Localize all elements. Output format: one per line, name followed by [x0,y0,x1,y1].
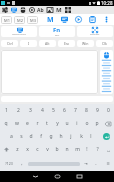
button[interactable]: Mouse [18,6,27,14]
button[interactable]: Macro M [43,14,57,25]
button[interactable]: I [20,40,37,47]
button[interactable]: q [0,117,11,130]
button[interactable]: y [52,117,62,130]
staticText: y [56,120,59,127]
button[interactable]: 0 [103,104,114,117]
button[interactable]: Image [45,6,54,14]
button[interactable]: l [86,130,96,143]
button[interactable]: Clipboard [85,14,99,25]
button[interactable]: Fn keys [39,26,75,37]
button[interactable]: Ctrl [1,40,18,47]
staticText: M [56,6,62,14]
button[interactable]: h [56,130,66,143]
button[interactable]: Touchpad [1,50,98,94]
button[interactable]: Play [27,6,36,14]
button[interactable]: Esc [58,40,75,47]
button[interactable]: r [32,117,42,130]
staticText: fullscreen [90,33,100,36]
button[interactable]: g [46,130,56,143]
button[interactable]: 9 [92,104,103,117]
button[interactable]: k [76,130,86,143]
button[interactable]: ? [92,143,102,156]
button[interactable]: 3 [24,104,36,117]
staticText: 1 [5,107,8,114]
staticText: n [65,146,69,153]
staticText: remote control [12,33,27,36]
button[interactable]: Enter [98,130,114,143]
button[interactable]: M3 [27,16,38,24]
button[interactable]: o [82,117,92,130]
button[interactable]: Text [36,6,45,14]
button[interactable]: Scroll wheel [100,50,113,94]
button[interactable]: Settings [0,6,9,14]
staticText: ␣ [107,147,110,152]
button[interactable]: 7 [70,104,81,117]
staticText: t [46,120,48,127]
staticText: 4 [41,107,44,114]
button[interactable]: 4 [36,104,48,117]
staticText: 0 [107,107,110,114]
button[interactable]: Remote display [1,26,37,37]
button[interactable]: Shift [0,143,12,156]
button[interactable]: Fullscreen [77,26,113,37]
button[interactable]: Display [57,14,71,25]
button[interactable]: Home [46,171,68,182]
button[interactable]: 5 [48,104,59,117]
button[interactable]: d [26,130,36,143]
button[interactable]: p [92,117,102,130]
button[interactable]: Back [24,171,46,182]
staticText: x [26,146,29,153]
button[interactable]: 8 [81,104,92,117]
staticText: l [90,133,92,140]
button[interactable]: c [32,143,42,156]
button[interactable]: Recent apps [68,171,90,182]
button[interactable]: z [12,143,22,156]
button[interactable]: m [72,143,82,156]
staticText: m [75,146,80,153]
button[interactable]: M1 [1,16,12,24]
button[interactable]: Clk [96,40,113,47]
button[interactable]: u [62,117,72,130]
button[interactable]: M2 [14,16,25,24]
button[interactable]: ⇥ [81,156,91,171]
button[interactable]: Remote display [9,6,18,14]
button[interactable]: j [66,130,76,143]
button[interactable]: w [11,117,22,130]
staticText: 2 [17,107,20,114]
button[interactable]: ␣ [102,143,114,156]
staticText: Alt [45,41,50,46]
button[interactable]: Win [77,40,94,47]
button[interactable]: f [36,130,46,143]
staticText: k [80,133,83,140]
button[interactable]: , [17,156,27,171]
button[interactable]: x [22,143,32,156]
button[interactable]: a [6,130,16,143]
staticText: i [76,120,78,127]
button[interactable]: 2 [12,104,24,117]
button[interactable]: i [72,117,82,130]
button[interactable]: 1 [0,104,12,117]
button[interactable]: 6 [59,104,70,117]
staticText: s [20,133,23,140]
button[interactable]: Alt [39,40,56,47]
button[interactable]: n [62,143,72,156]
button[interactable]: e [22,117,32,130]
button[interactable]: ?123 [0,156,17,171]
button[interactable]: Apps [63,6,72,14]
button[interactable]: s [16,130,26,143]
button[interactable]: b [52,143,62,156]
button[interactable]: More options [99,14,113,25]
staticText: q [4,120,8,127]
button[interactable]: Macro [54,6,63,14]
button[interactable]: t [42,117,52,130]
button[interactable]: v [42,143,52,156]
button[interactable]: Run [71,14,85,25]
staticText: 10:28 [101,0,113,6]
staticText: p [95,120,99,127]
button[interactable]: ☰ [101,156,114,171]
button[interactable]: Backspace [102,117,114,130]
button[interactable]: ! [82,143,92,156]
